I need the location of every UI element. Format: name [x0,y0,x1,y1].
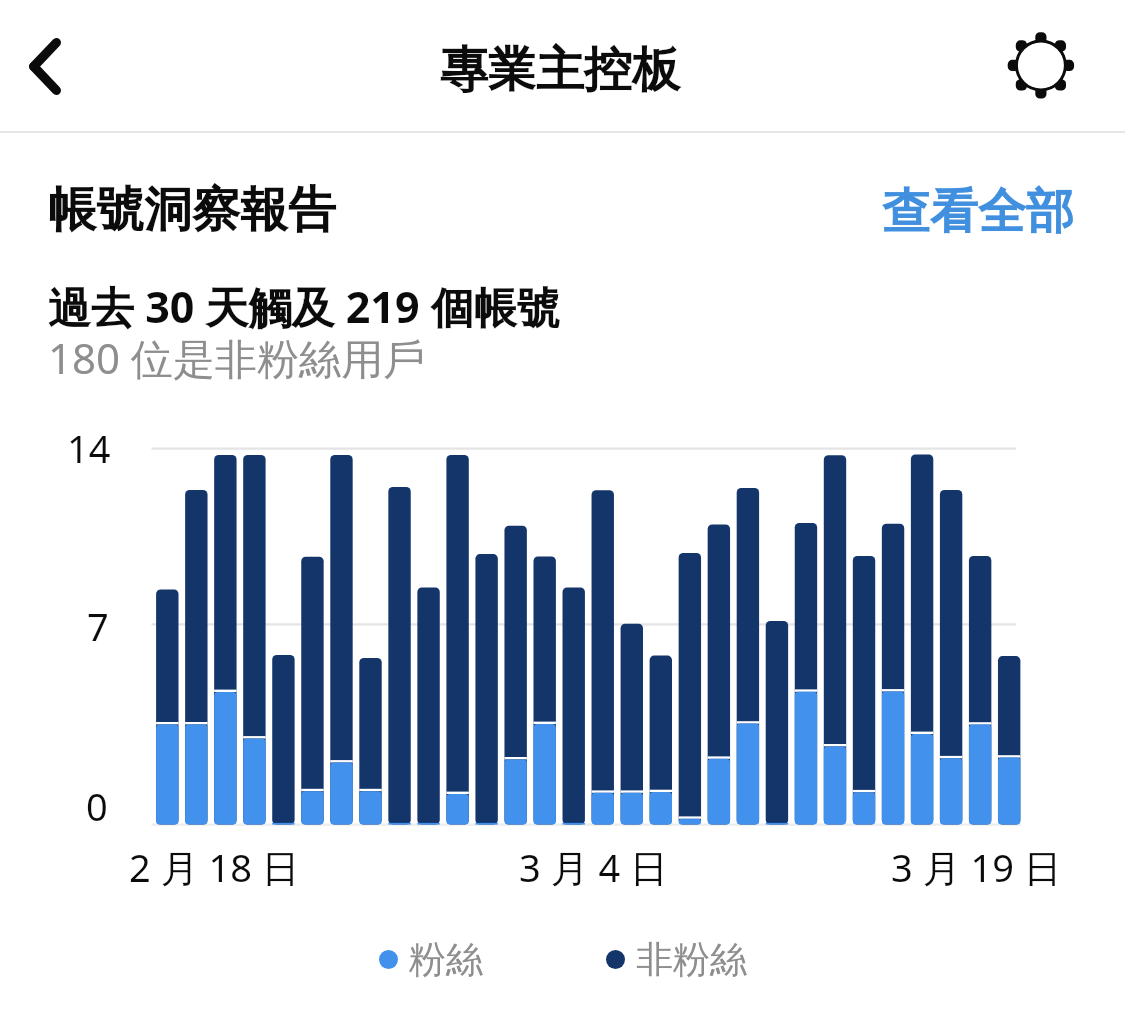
staticText: 7 [87,600,109,652]
button[interactable]: 查看全部 [882,182,1074,242]
button[interactable]: Settings [997,22,1085,110]
staticText: 查看全部 [882,182,1074,242]
staticText: 0 [86,780,108,832]
staticText: 180 位是非粉絲用戶 [48,329,425,386]
staticText: 粉絲 [409,936,483,983]
staticText: 非粉絲 [636,936,747,983]
staticText: 3 月 19 日 [891,841,1062,893]
staticText: 2 月 18 日 [129,841,300,893]
staticText: 過去 30 天觸及 219 個帳號 [48,277,560,336]
staticText: 帳號洞察報告 [48,180,336,240]
staticText: 3 月 4 日 [519,841,669,893]
staticText: 專業主控板 [440,40,680,100]
button[interactable]: Back [6,22,94,110]
staticText: 14 [67,422,111,474]
